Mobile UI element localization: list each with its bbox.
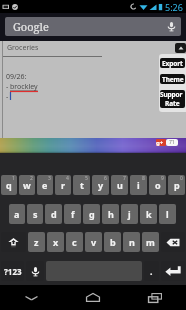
button[interactable]: l [159,204,176,224]
button[interactable]: Theme [160,74,185,84]
button[interactable]: Google [5,17,181,36]
staticText: r [61,179,66,191]
staticText: g [89,208,95,220]
staticText: j [128,208,131,220]
staticText: brockley [10,82,38,92]
button[interactable]: a [9,204,25,224]
button[interactable]: b [104,232,121,252]
staticText: 71 [169,139,175,146]
staticText: 9 [161,175,164,182]
button[interactable]: p [168,175,185,195]
staticText: 2 [30,175,33,182]
staticText: c [72,236,77,248]
staticText: d [51,208,57,220]
staticText: . [150,265,153,277]
staticText: - [6,92,9,102]
staticText: 5:26 [165,1,183,13]
button[interactable]: Delete [161,232,185,252]
button[interactable]: Voice input [26,261,44,281]
button[interactable]: o [149,175,166,195]
staticText: y [98,179,104,191]
staticText: 8 [142,175,145,182]
staticText: - [6,82,9,92]
staticText: e [42,179,48,191]
button[interactable]: h [102,204,119,224]
staticText: u [117,179,123,191]
button[interactable]: i [130,175,147,195]
button[interactable]: r [55,175,71,195]
button[interactable]: d [45,204,62,224]
button[interactable]: f [64,204,81,224]
button[interactable]: Export [160,58,185,68]
button[interactable]: q [1,175,17,195]
staticText: l [166,208,169,220]
staticText: 7 [123,175,126,182]
staticText: v [91,236,97,248]
staticText: Google [13,19,49,34]
button[interactable]: Back [0,285,62,310]
staticText: h [108,208,114,220]
staticText: f [71,208,75,220]
staticText: 4 [66,175,69,182]
button[interactable]: z [28,232,45,252]
staticText: x [53,236,59,248]
staticText: 09/26: [6,72,27,82]
button[interactable]: j [121,204,138,224]
staticText: n [129,236,135,248]
button[interactable]: g+1 [0,138,186,153]
button[interactable]: m [142,232,159,252]
staticText: 0 [180,175,183,182]
button[interactable]: y [92,175,109,195]
button[interactable]: e [37,175,53,195]
button[interactable]: g [83,204,100,224]
button[interactable]: t [73,175,90,195]
button[interactable]: Voice search [161,17,181,36]
staticText: 6 [104,175,107,182]
button[interactable]: Collapse menu [175,43,186,53]
staticText: q [6,179,12,191]
staticText: Support- [160,90,185,99]
staticText: ?123 [4,266,22,277]
button[interactable]: Recents [124,285,186,310]
staticText: g+1 [156,139,166,146]
staticText: t [80,179,84,191]
staticText: 1 [12,175,15,182]
button[interactable]: ?123 [1,261,24,281]
button[interactable]: s [27,204,43,224]
button[interactable]: Support- [160,90,185,108]
staticText: b [110,236,116,248]
button[interactable]: v [85,232,102,252]
staticText: i [137,179,140,191]
button[interactable]: u [111,175,128,195]
staticText: Export [162,59,183,68]
button[interactable]: Shift [1,232,26,252]
button[interactable]: Home [62,285,124,310]
staticText: o [155,179,161,191]
staticText: k [146,208,152,220]
staticText: p [174,179,180,191]
button[interactable]: Enter [161,261,185,281]
staticText: w [23,179,31,191]
staticText: Theme [162,75,184,84]
staticText: 5 [85,175,88,182]
button[interactable]: x [47,232,64,252]
button[interactable]: c [66,232,83,252]
button[interactable]: . [144,261,159,281]
staticText: z [34,236,39,248]
button[interactable]: k [140,204,157,224]
staticText: 3 [48,175,51,182]
staticText: Rate [165,99,180,108]
staticText: m [146,236,155,248]
staticText: s [33,208,38,220]
staticText: a [14,208,20,220]
staticText: Groceries [7,43,39,53]
button[interactable]: w [19,175,35,195]
button[interactable]: n [123,232,140,252]
